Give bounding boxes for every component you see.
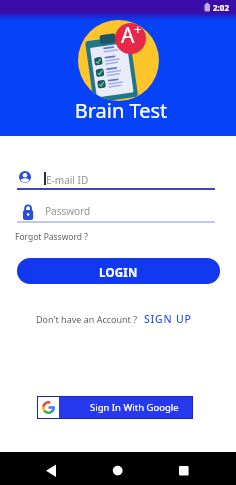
staticText: 2:02 <box>213 2 229 13</box>
button[interactable] <box>0 452 78 485</box>
staticText: + <box>134 20 142 38</box>
staticText: E-mail ID <box>46 173 89 187</box>
button[interactable]: Sign In With Google <box>37 396 193 419</box>
button[interactable]: Password <box>17 200 216 222</box>
button[interactable] <box>78 452 157 485</box>
staticText: A <box>121 21 135 50</box>
staticText: LOGIN <box>99 265 138 281</box>
button[interactable]: SIGN UP <box>144 312 192 326</box>
button[interactable]: E-mail ID <box>17 166 216 190</box>
staticText: Brain Test <box>3 97 236 124</box>
staticText: Password <box>45 204 91 218</box>
button[interactable] <box>157 452 236 485</box>
staticText: Don't have an Account ? <box>36 313 138 325</box>
button[interactable]: Forgot Password ? <box>15 231 88 243</box>
button[interactable]: LOGIN <box>17 258 220 284</box>
staticText: Sign In With Google <box>90 401 179 414</box>
